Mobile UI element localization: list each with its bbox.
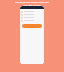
staticText: Recharge your mobile easily and: [15, 1, 49, 4]
button[interactable]: [21, 10, 43, 13]
button[interactable]: [21, 19, 43, 22]
staticText: pay with one tap: [23, 4, 41, 7]
button[interactable]: [21, 16, 43, 19]
button[interactable]: [21, 13, 43, 16]
button[interactable]: [22, 24, 42, 28]
